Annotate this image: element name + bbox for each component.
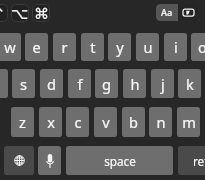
staticText: m xyxy=(182,112,196,132)
button[interactable]: Option xyxy=(11,4,29,22)
button[interactable]: Control xyxy=(0,4,8,22)
button[interactable]: s xyxy=(12,69,35,98)
staticText: r xyxy=(61,37,68,57)
staticText: i xyxy=(174,37,178,57)
staticText: x xyxy=(47,112,55,132)
staticText: u xyxy=(143,37,153,57)
staticText: return xyxy=(193,153,205,169)
staticText: ⌃ xyxy=(0,5,6,22)
button[interactable]: Keyboard layout xyxy=(178,4,199,21)
button[interactable]: a xyxy=(0,69,8,98)
button[interactable]: b xyxy=(122,107,145,137)
button[interactable]: Command xyxy=(32,4,50,22)
button[interactable]: t xyxy=(81,33,104,61)
staticText: k xyxy=(186,74,194,94)
staticText: ⌥ xyxy=(11,5,29,22)
button[interactable]: v xyxy=(94,107,117,137)
staticText: z xyxy=(19,112,26,132)
staticText: f xyxy=(77,74,83,94)
button[interactable]: o xyxy=(191,33,205,61)
staticText: n xyxy=(156,112,166,132)
staticText: v xyxy=(102,112,110,132)
staticText: s xyxy=(20,74,27,94)
button[interactable]: f xyxy=(68,69,91,98)
button[interactable]: e xyxy=(25,33,48,61)
button[interactable]: h xyxy=(123,69,146,98)
button[interactable]: r xyxy=(53,33,76,61)
staticText: Aa xyxy=(161,6,173,19)
button[interactable]: x xyxy=(39,107,62,137)
button[interactable]: Dictate xyxy=(38,146,61,175)
staticText: b xyxy=(129,112,138,132)
button[interactable]: Aa xyxy=(156,4,178,21)
button[interactable]: space xyxy=(66,146,173,175)
button[interactable]: Next keyboard xyxy=(4,146,34,175)
staticText: c xyxy=(74,112,82,132)
staticText: h xyxy=(130,74,140,94)
button[interactable]: y xyxy=(108,33,131,61)
button[interactable]: i xyxy=(164,33,187,61)
button[interactable]: g xyxy=(95,69,118,98)
button[interactable]: k xyxy=(178,69,201,98)
button[interactable]: u xyxy=(136,33,159,61)
button[interactable]: w xyxy=(0,33,21,61)
button[interactable]: n xyxy=(149,107,172,137)
staticText: space xyxy=(104,153,136,169)
staticText: o xyxy=(198,37,205,57)
button[interactable]: m xyxy=(177,107,200,137)
staticText: d xyxy=(47,74,56,94)
button[interactable]: j xyxy=(151,69,174,98)
staticText: y xyxy=(116,37,124,57)
staticText: e xyxy=(32,37,41,57)
staticText: t xyxy=(90,37,96,57)
button[interactable]: z xyxy=(11,107,34,137)
staticText: j xyxy=(161,74,165,94)
button[interactable]: d xyxy=(40,69,63,98)
staticText: g xyxy=(102,74,111,94)
staticText: ⌘ xyxy=(34,5,49,22)
staticText: w xyxy=(4,37,16,57)
button[interactable]: return xyxy=(178,146,205,175)
button[interactable]: c xyxy=(66,107,89,137)
